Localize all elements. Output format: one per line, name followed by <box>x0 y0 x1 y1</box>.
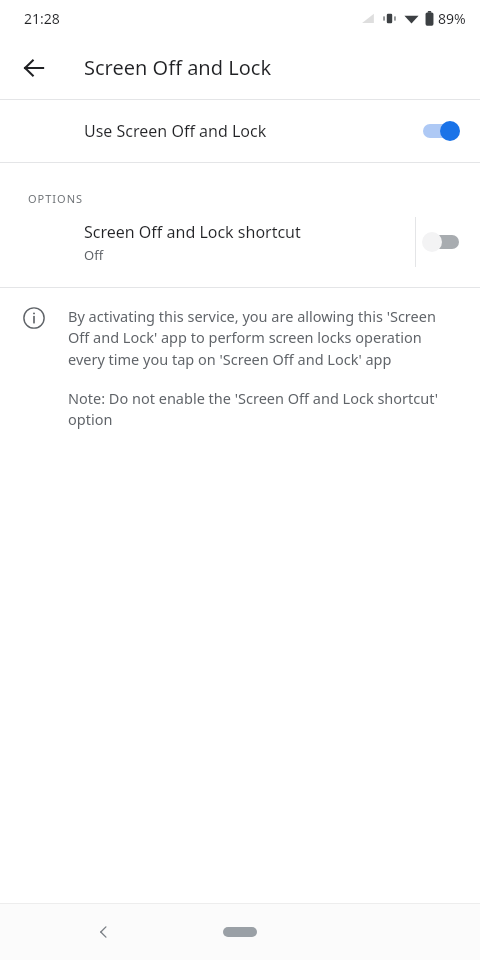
button[interactable]: Screen Off and Lock shortcut <box>0 206 480 278</box>
staticText: Screen Off and Lock shortcut <box>84 221 301 243</box>
button[interactable]: Switch off <box>416 224 468 260</box>
staticText: Off <box>84 246 104 264</box>
button[interactable]: Switch on <box>414 113 466 149</box>
button[interactable]: Home <box>212 914 268 950</box>
button[interactable]: Use Screen Off and Lock <box>0 100 480 162</box>
staticText: Screen Off and Lock <box>84 54 272 81</box>
staticText: 21:28 <box>24 9 60 28</box>
staticText: 89% <box>438 9 466 28</box>
button[interactable]: Back <box>10 44 58 92</box>
button[interactable]: Back <box>80 908 128 956</box>
staticText: Use Screen Off and Lock <box>84 120 414 142</box>
staticText: OPTIONS <box>28 191 84 206</box>
staticText: Note: Do not enable the 'Screen Off and … <box>68 388 454 430</box>
staticText: By activating this service, you are allo… <box>68 306 454 370</box>
